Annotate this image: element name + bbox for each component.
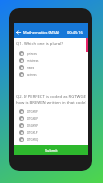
button[interactable]: Submit [14,145,88,155]
button[interactable]: princes [16,50,86,57]
staticText: DTGYKP [27,110,38,114]
button[interactable]: DTGYKP [16,108,86,115]
staticText: Mathematics (MSA) [23,30,60,35]
staticText: DTGYKQ [27,138,39,142]
button[interactable]: mistress [16,57,86,64]
staticText: Q1. Which one is plural? [16,41,64,47]
button[interactable]: news [16,64,86,71]
staticText: Q2. If PERFECT is coded as RGTWGEV, [16,94,86,100]
staticText: DSGYKP [27,124,38,128]
staticText: how is BREWIN written in that code? [16,100,86,106]
button[interactable]: DTGYKQ [16,136,86,143]
staticText: DTGYLP [27,131,38,135]
staticText: DTGXKP [27,117,38,121]
staticText: news [27,66,35,70]
button[interactable]: Back [14,28,23,37]
button[interactable]: DTGYLP [16,129,86,136]
staticText: 00:45:16 [67,30,83,35]
button[interactable]: actress [16,71,86,78]
staticText: Submit [45,148,58,153]
staticText: princes [27,52,37,56]
button[interactable]: DSGYKP [16,122,86,129]
staticText: mistress [27,59,39,63]
button[interactable]: DTGXKP [16,115,86,122]
staticText: actress [27,73,37,77]
